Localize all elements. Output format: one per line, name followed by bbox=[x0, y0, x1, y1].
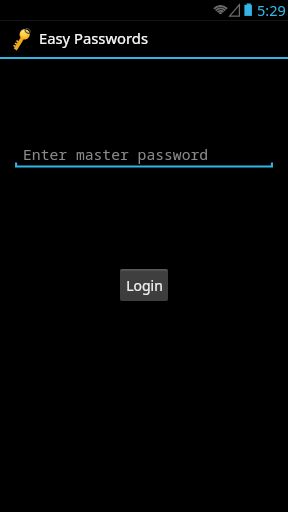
staticText: 5:29 bbox=[257, 0, 286, 20]
button[interactable]: Easy Passwords app icon bbox=[14, 27, 38, 51]
staticText: Easy Passwords bbox=[39, 28, 149, 48]
button[interactable]: Enter master password bbox=[15, 141, 273, 168]
button[interactable]: Login bbox=[120, 269, 168, 301]
staticText: Login bbox=[126, 276, 163, 295]
staticText: Enter master password bbox=[23, 144, 209, 164]
